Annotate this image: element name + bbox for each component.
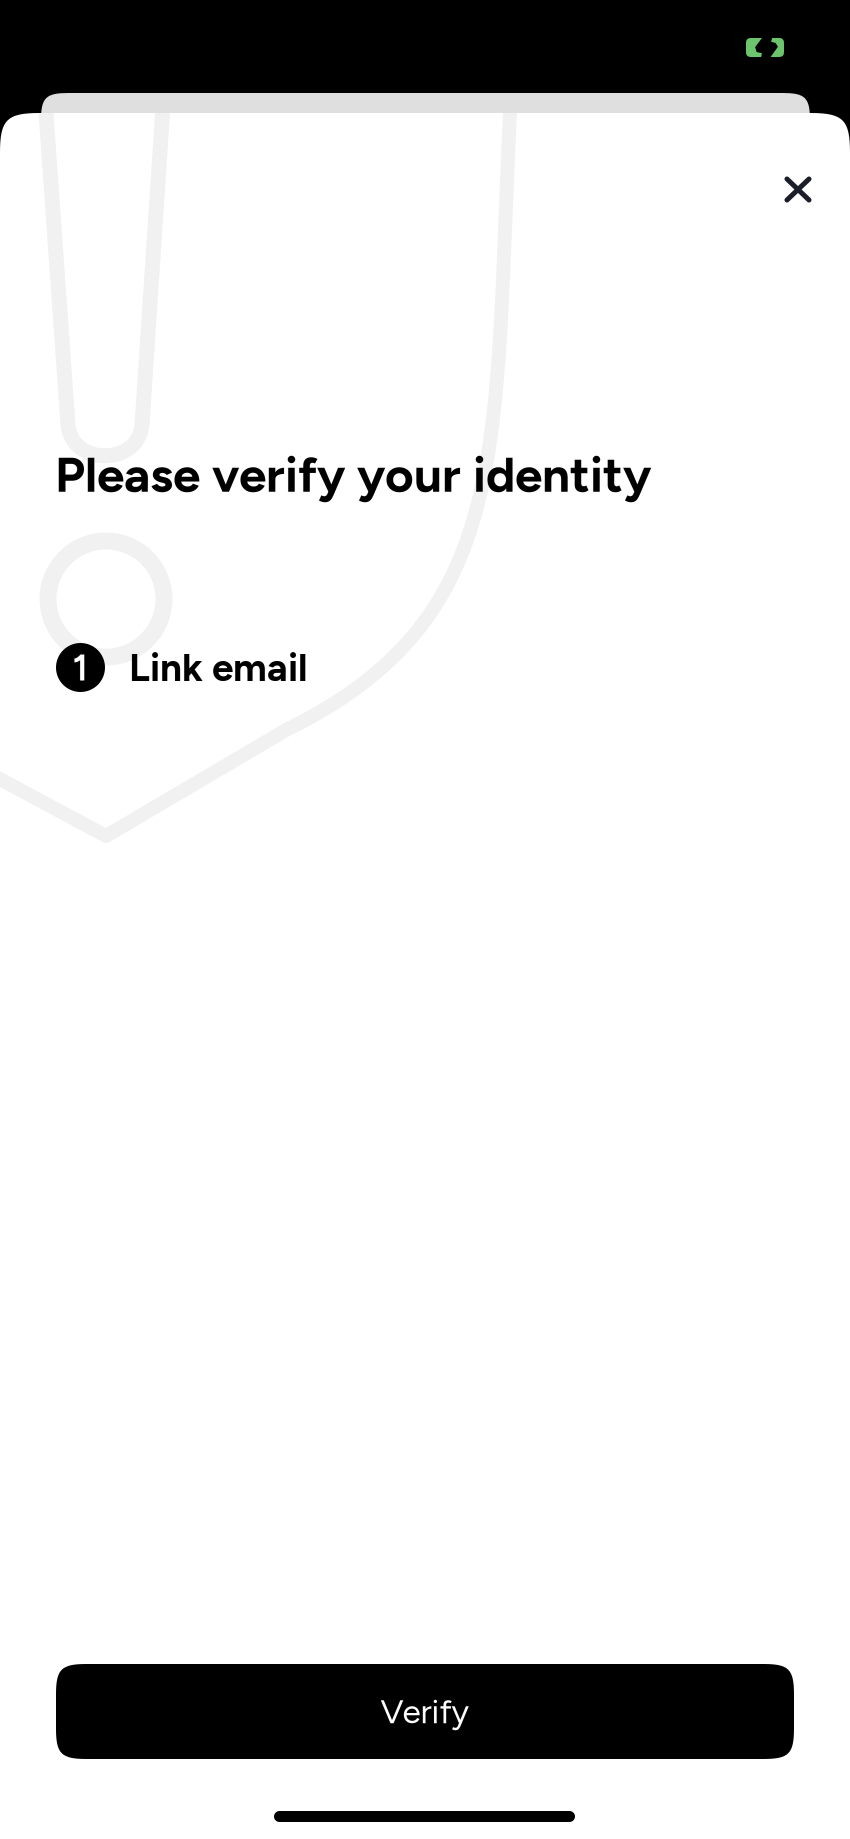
staticText: Link email	[129, 644, 308, 691]
button[interactable]: Close	[764, 156, 832, 223]
button[interactable]: 1	[56, 643, 794, 692]
staticText: 1	[72, 645, 88, 690]
button[interactable]: Verify	[56, 1664, 794, 1759]
staticText: Please verify your identity	[55, 445, 651, 504]
staticText: Verify	[380, 1691, 469, 1731]
